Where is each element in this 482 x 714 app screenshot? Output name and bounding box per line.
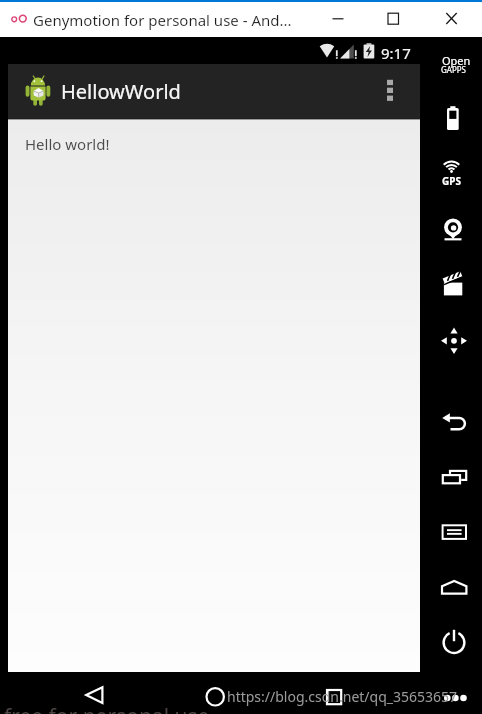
button[interactable] (437, 324, 471, 356)
button[interactable] (78, 680, 112, 712)
staticText: Open (442, 53, 471, 68)
button[interactable] (0, 0, 482, 37)
button[interactable] (438, 8, 463, 30)
staticText: free for personal use (4, 702, 210, 714)
staticText: https://blog.csdn.net/qq_35653657 (227, 687, 458, 706)
button[interactable] (437, 158, 471, 188)
staticText: Genymotion for personal use - And... (33, 10, 292, 30)
staticText: HellowWorld (61, 78, 181, 105)
button[interactable] (437, 574, 471, 598)
button[interactable] (378, 68, 402, 112)
button[interactable] (325, 8, 350, 30)
staticText: Hello world! (25, 134, 110, 154)
button[interactable] (437, 626, 471, 658)
button[interactable] (380, 8, 405, 30)
button[interactable] (437, 408, 471, 434)
button[interactable] (437, 212, 471, 244)
button[interactable] (437, 100, 471, 134)
staticText: GPS (442, 174, 461, 188)
staticText: 9:17 (381, 43, 411, 63)
button[interactable] (437, 268, 471, 298)
button[interactable] (317, 680, 351, 712)
button[interactable] (437, 518, 471, 544)
button[interactable] (198, 680, 232, 712)
button[interactable] (437, 464, 471, 488)
staticText: GAPPS (441, 64, 467, 75)
